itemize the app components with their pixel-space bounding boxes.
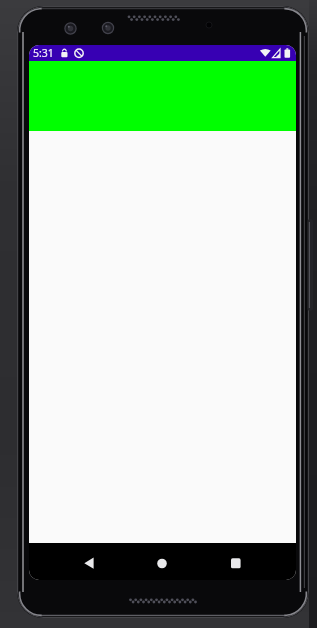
button[interactable] (207, 543, 296, 580)
button[interactable] (118, 543, 207, 580)
staticText: 5:31 (33, 46, 54, 60)
button[interactable] (29, 543, 118, 580)
